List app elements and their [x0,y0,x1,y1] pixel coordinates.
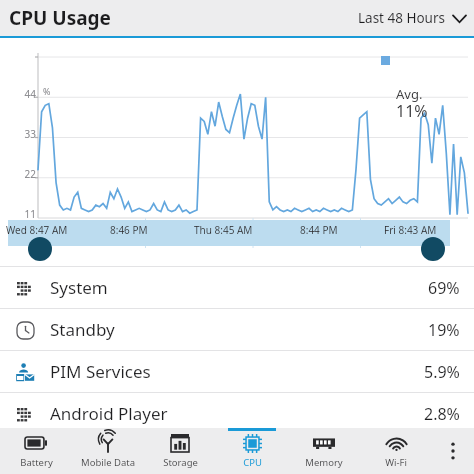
staticText: 8:46 PM [110,223,148,237]
button[interactable]: Android Player [0,393,474,434]
staticText: % [43,85,51,97]
staticText: 22 [14,167,36,181]
button[interactable]: More options [432,428,474,474]
staticText: 8:44 PM [300,223,338,237]
staticText: 19% [428,319,460,341]
staticText: 5.9% [424,361,460,383]
staticText: Battery [20,456,53,469]
staticText: Last 48 Hours [358,9,446,27]
button[interactable]: CPU [216,428,288,474]
staticText: Avg. [396,85,423,103]
staticText: Memory [305,456,343,469]
button[interactable]: Standby [0,309,474,350]
button[interactable]: Battery [0,428,72,474]
staticText: Thu 8:45 AM [194,223,253,237]
staticText: Storage [163,456,198,469]
staticText: 11% [396,100,428,122]
staticText: CPU Usage [9,5,111,31]
staticText: Standby [50,318,115,341]
button[interactable]: PIM Services [0,351,474,392]
staticText: Wed 8:47 AM [6,223,68,237]
staticText: CPU [243,456,262,469]
staticText: Wi-Fi [385,456,407,469]
button[interactable]: Mobile Data [72,428,144,474]
staticText: 69% [428,277,460,299]
button[interactable]: Memory [288,428,360,474]
staticText: PIM Services [50,360,151,383]
button[interactable]: Last 48 Hours [350,9,474,27]
button[interactable]: Storage [144,428,216,474]
staticText: 2.8% [424,403,460,425]
staticText: 11 [14,207,36,221]
button[interactable]: System [0,267,474,308]
staticText: 33 [14,127,36,141]
staticText: Fri 8:43 AM [384,223,437,237]
staticText: System [50,276,108,299]
button[interactable]: Wi-Fi [360,428,432,474]
staticText: Mobile Data [81,456,135,469]
staticText: 44 [14,87,36,101]
staticText: Android Player [50,402,168,425]
